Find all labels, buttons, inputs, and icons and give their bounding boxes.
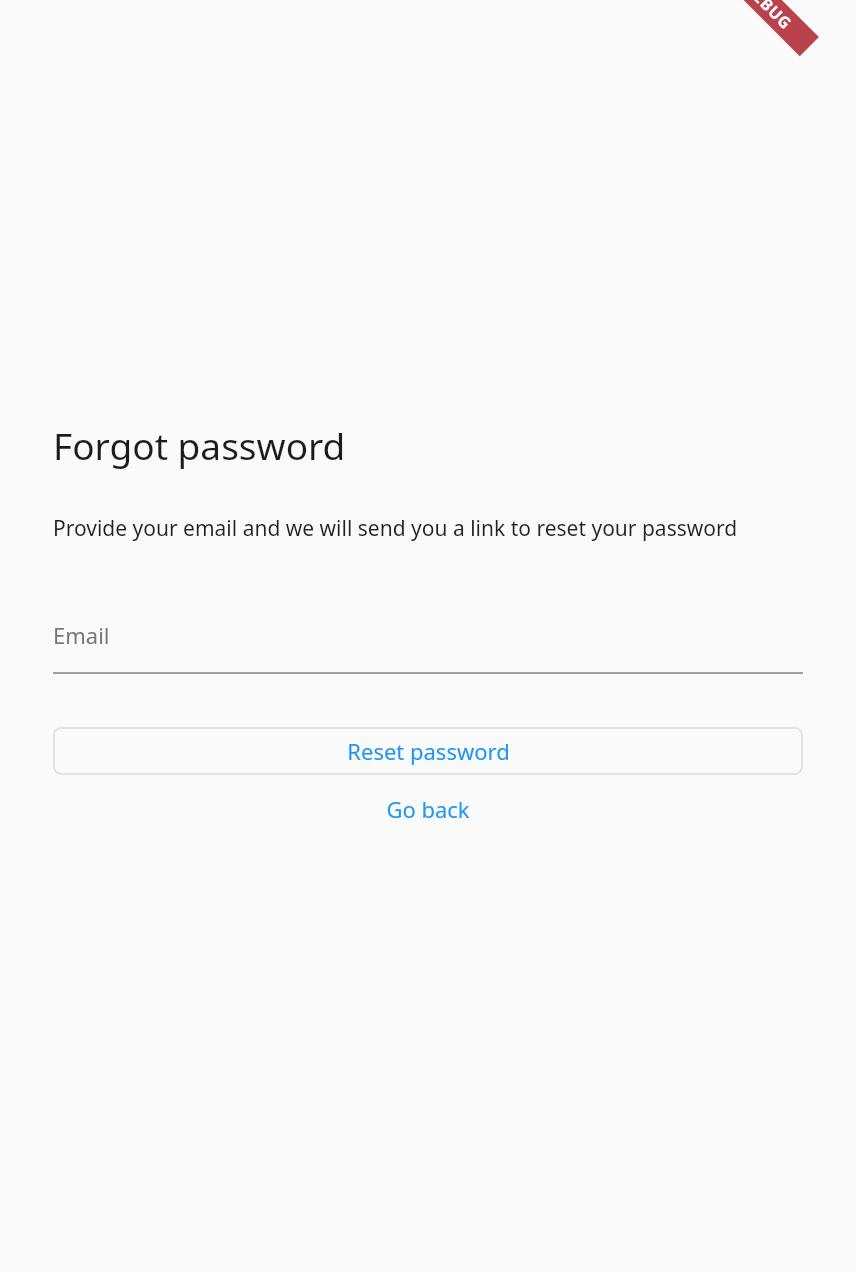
button[interactable] <box>53 727 803 775</box>
button[interactable] <box>362 787 494 831</box>
button[interactable] <box>53 613 803 674</box>
other: Debug build banner <box>740 0 856 116</box>
